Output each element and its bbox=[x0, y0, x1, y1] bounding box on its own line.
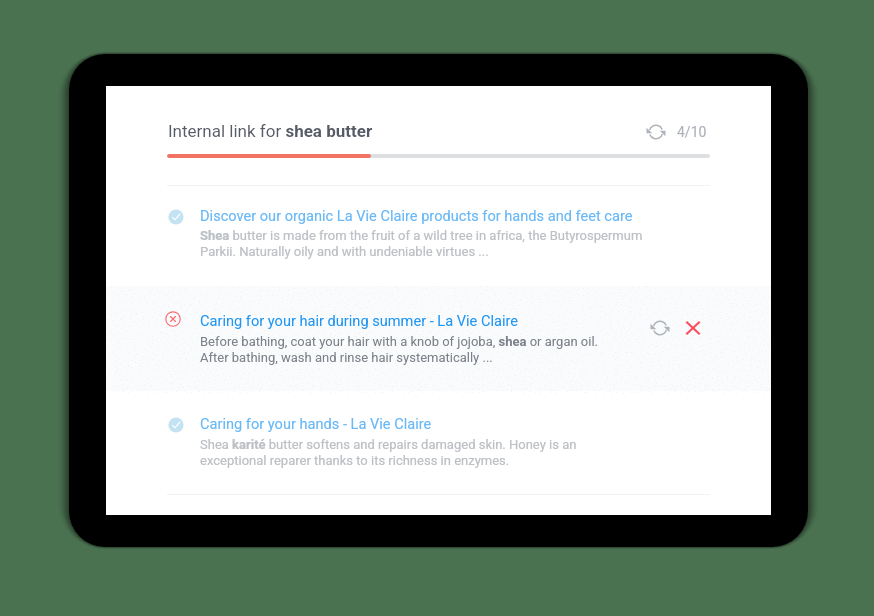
button[interactable] bbox=[106, 286, 771, 391]
staticText: Caring for your hands - La Vie Claire bbox=[200, 415, 432, 432]
button[interactable]: Discover our organic La Vie Claire produ… bbox=[200, 207, 633, 224]
button[interactable]: Refresh bbox=[645, 121, 667, 143]
staticText: Shea karité butter softens and repairs d… bbox=[200, 437, 577, 452]
staticText: exceptional reparer thanks to its richne… bbox=[200, 453, 510, 468]
staticText: Caring for your hair during summer - La … bbox=[200, 312, 519, 329]
staticText: After bathing, wash and rinse hair syste… bbox=[200, 350, 493, 365]
button[interactable]: Remove bbox=[683, 318, 703, 338]
button[interactable]: Caring for your hair during summer - La … bbox=[200, 312, 519, 329]
staticText: Discover our organic La Vie Claire produ… bbox=[200, 207, 633, 224]
staticText: Parkii. Naturally oily and with undeniab… bbox=[200, 244, 489, 259]
button[interactable]: Indexed bbox=[168, 209, 184, 225]
button[interactable]: Caring for your hands - La Vie Claire bbox=[200, 415, 432, 432]
button[interactable]: Indexed bbox=[168, 417, 184, 433]
staticText: Shea butter is made from the fruit of a … bbox=[200, 228, 643, 243]
button[interactable]: Internal link for shea butter bbox=[168, 121, 373, 141]
staticText: Before bathing, coat your hair with a kn… bbox=[200, 334, 599, 349]
staticText: 4/10 bbox=[677, 124, 707, 140]
button[interactable]: Not indexed bbox=[165, 311, 181, 327]
button[interactable]: Recrawl bbox=[649, 317, 671, 339]
staticText: Internal link for shea butter bbox=[168, 121, 373, 141]
